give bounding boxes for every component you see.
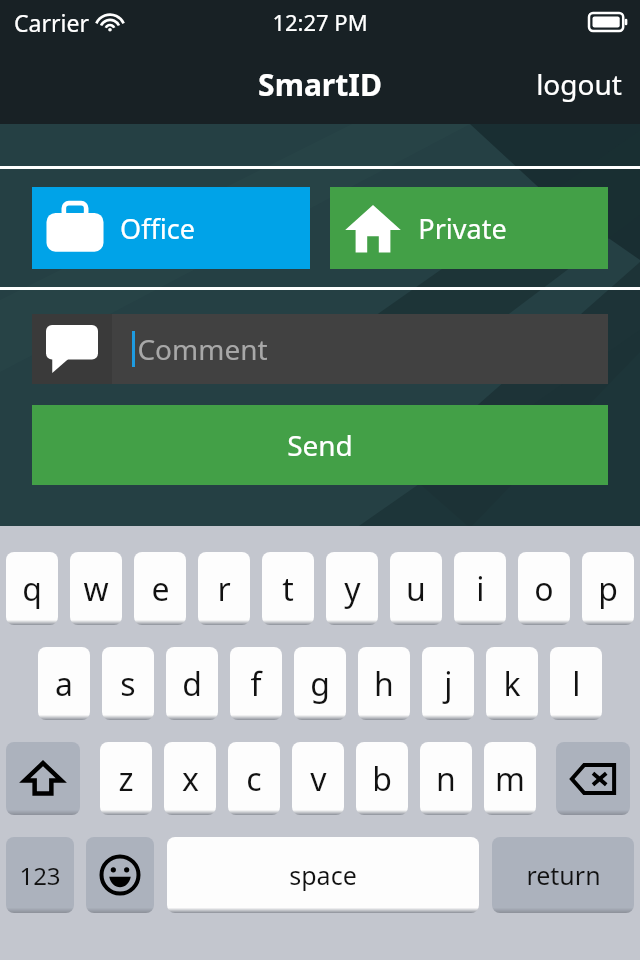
button[interactable]: y (326, 552, 378, 625)
button[interactable]: z (100, 742, 152, 815)
other: Battery (589, 13, 627, 31)
button[interactable]: s (102, 647, 154, 720)
button[interactable]: d (166, 647, 218, 720)
staticText: 12:27 PM (272, 7, 368, 37)
button[interactable]: Comment (32, 314, 608, 384)
button[interactable]: o (518, 552, 570, 625)
button[interactable]: Shift (6, 742, 80, 815)
staticText: x (182, 757, 199, 801)
staticText: a (55, 662, 73, 706)
button[interactable]: i (454, 552, 506, 625)
staticText: l (572, 662, 581, 706)
button[interactable]: 123 (6, 837, 74, 913)
staticText: s (120, 662, 136, 706)
staticText: h (374, 662, 394, 706)
button[interactable]: g (294, 647, 346, 720)
staticText: z (118, 757, 134, 801)
button[interactable]: f (230, 647, 282, 720)
staticText: g (310, 662, 330, 706)
button[interactable]: h (358, 647, 410, 720)
button[interactable]: q (6, 552, 58, 625)
staticText: q (22, 567, 42, 611)
staticText: e (151, 567, 170, 611)
button[interactable]: Backspace (556, 742, 630, 815)
staticText: m (495, 757, 525, 801)
button[interactable]: Send (32, 405, 608, 485)
button[interactable]: v (292, 742, 344, 815)
staticText: c (246, 757, 262, 801)
staticText: Office (120, 210, 195, 247)
staticText: i (476, 567, 485, 611)
staticText: Carrier (14, 7, 89, 38)
button[interactable]: n (420, 742, 472, 815)
button[interactable]: b (356, 742, 408, 815)
other: Wi-Fi (97, 13, 123, 32)
button[interactable]: r (198, 552, 250, 625)
staticText: y (344, 567, 361, 611)
staticText: f (250, 662, 262, 706)
staticText: u (406, 567, 426, 611)
button[interactable]: m (484, 742, 536, 815)
staticText: j (444, 662, 453, 706)
staticText: r (217, 567, 231, 611)
staticText: Private (418, 210, 507, 247)
button[interactable]: j (422, 647, 474, 720)
button[interactable]: space (167, 837, 479, 913)
staticText: v (310, 757, 327, 801)
button[interactable]: p (582, 552, 634, 625)
staticText: p (598, 567, 618, 611)
button[interactable]: x (164, 742, 216, 815)
button[interactable]: w (70, 552, 122, 625)
button[interactable]: c (228, 742, 280, 815)
staticText: 123 (19, 859, 61, 892)
staticText: space (289, 858, 357, 892)
button[interactable]: return (492, 837, 634, 913)
staticText: return (526, 858, 601, 892)
staticText: b (372, 757, 392, 801)
button[interactable]: Private (330, 187, 608, 269)
button[interactable]: t (262, 552, 314, 625)
staticText: Send (287, 426, 353, 464)
button[interactable]: logout (518, 53, 640, 115)
staticText: d (182, 662, 202, 706)
staticText: k (503, 662, 521, 706)
staticText: Comment (137, 330, 268, 368)
staticText: SmartID (258, 64, 382, 105)
button[interactable]: u (390, 552, 442, 625)
button[interactable]: l (550, 647, 602, 720)
staticText: logout (536, 65, 622, 103)
button[interactable]: k (486, 647, 538, 720)
staticText: t (282, 567, 294, 611)
button[interactable]: Emoji (86, 837, 154, 913)
button[interactable]: e (134, 552, 186, 625)
staticText: n (436, 757, 456, 801)
button[interactable]: a (38, 647, 90, 720)
staticText: o (534, 567, 554, 611)
button[interactable]: Office (32, 187, 310, 269)
staticText: w (83, 567, 109, 611)
